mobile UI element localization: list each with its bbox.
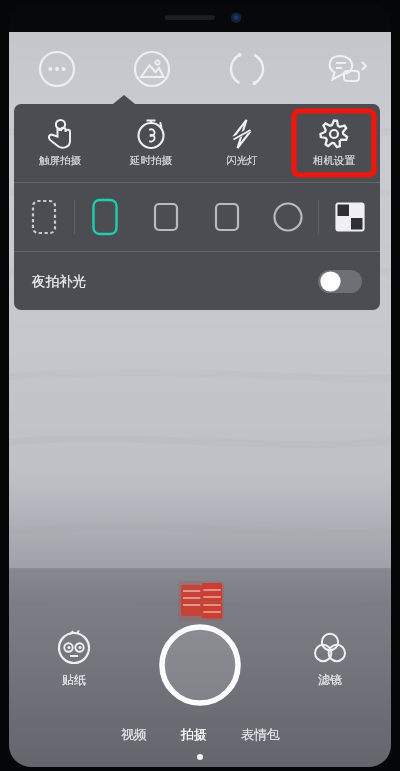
button[interactable]: 贴纸	[57, 631, 91, 687]
button[interactable]: 夜拍补光	[14, 252, 380, 310]
button[interactable]: 延时拍摄	[105, 104, 196, 182]
button[interactable]: Gallery	[104, 46, 199, 92]
staticText: 视频	[121, 726, 147, 742]
button[interactable]: 视频	[117, 723, 151, 745]
staticText: 闪光灯	[226, 154, 258, 167]
button[interactable]: 相机设置	[292, 109, 376, 177]
staticText: 夜拍补光	[32, 273, 86, 290]
staticText: 延时拍摄	[130, 154, 172, 167]
staticText: 拍摄	[181, 726, 207, 742]
button[interactable]: 表情包	[237, 723, 284, 745]
button[interactable]: 触屏拍摄	[14, 104, 105, 182]
button[interactable]: Custom frame	[14, 183, 74, 251]
button[interactable]: 闪光灯	[196, 104, 288, 182]
button[interactable]: Chat	[295, 46, 391, 92]
button[interactable]: Grid collage	[319, 183, 380, 251]
button[interactable]: 3:4 ratio	[135, 183, 196, 251]
button[interactable]: Switch camera	[199, 46, 295, 92]
button[interactable]: More options	[9, 46, 104, 92]
staticText: 触屏拍摄	[39, 154, 81, 167]
button[interactable]: 拍摄	[177, 723, 211, 745]
staticText: 表情包	[241, 726, 280, 742]
staticText: 贴纸	[62, 672, 86, 687]
staticText: 相机设置	[313, 154, 355, 167]
button[interactable]: 滤镜	[313, 631, 347, 687]
button[interactable]: Full ratio	[75, 183, 135, 251]
button[interactable]: Circle ratio	[257, 183, 318, 251]
staticText: 滤镜	[318, 672, 342, 687]
button[interactable]: Night fill light toggle	[318, 270, 362, 293]
button[interactable]: 1:1 ratio	[196, 183, 257, 251]
button[interactable]: Shutter	[158, 623, 242, 707]
